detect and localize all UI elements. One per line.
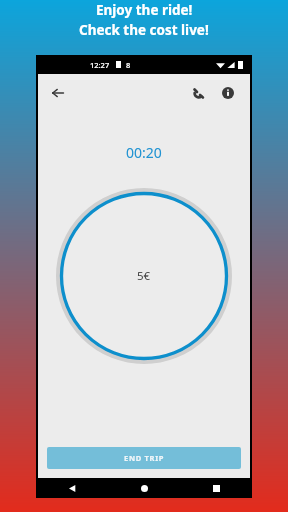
button[interactable]: Call [185,80,211,106]
button[interactable]: END TRIP [47,447,241,469]
button[interactable]: Back [36,478,108,498]
staticText: END TRIP [124,453,165,463]
staticText: 00:20 [126,143,162,162]
staticText: 5€ [137,268,151,284]
staticText: Check the cost live! [79,21,209,39]
button[interactable]: Home [108,478,180,498]
button[interactable]: Info [215,80,241,106]
button[interactable]: Recents [180,478,252,498]
staticText: 12:27 [90,60,110,70]
staticText: Enjoy the ride! [96,1,193,19]
staticText: 8 [126,60,131,70]
button[interactable]: Back [45,80,71,106]
